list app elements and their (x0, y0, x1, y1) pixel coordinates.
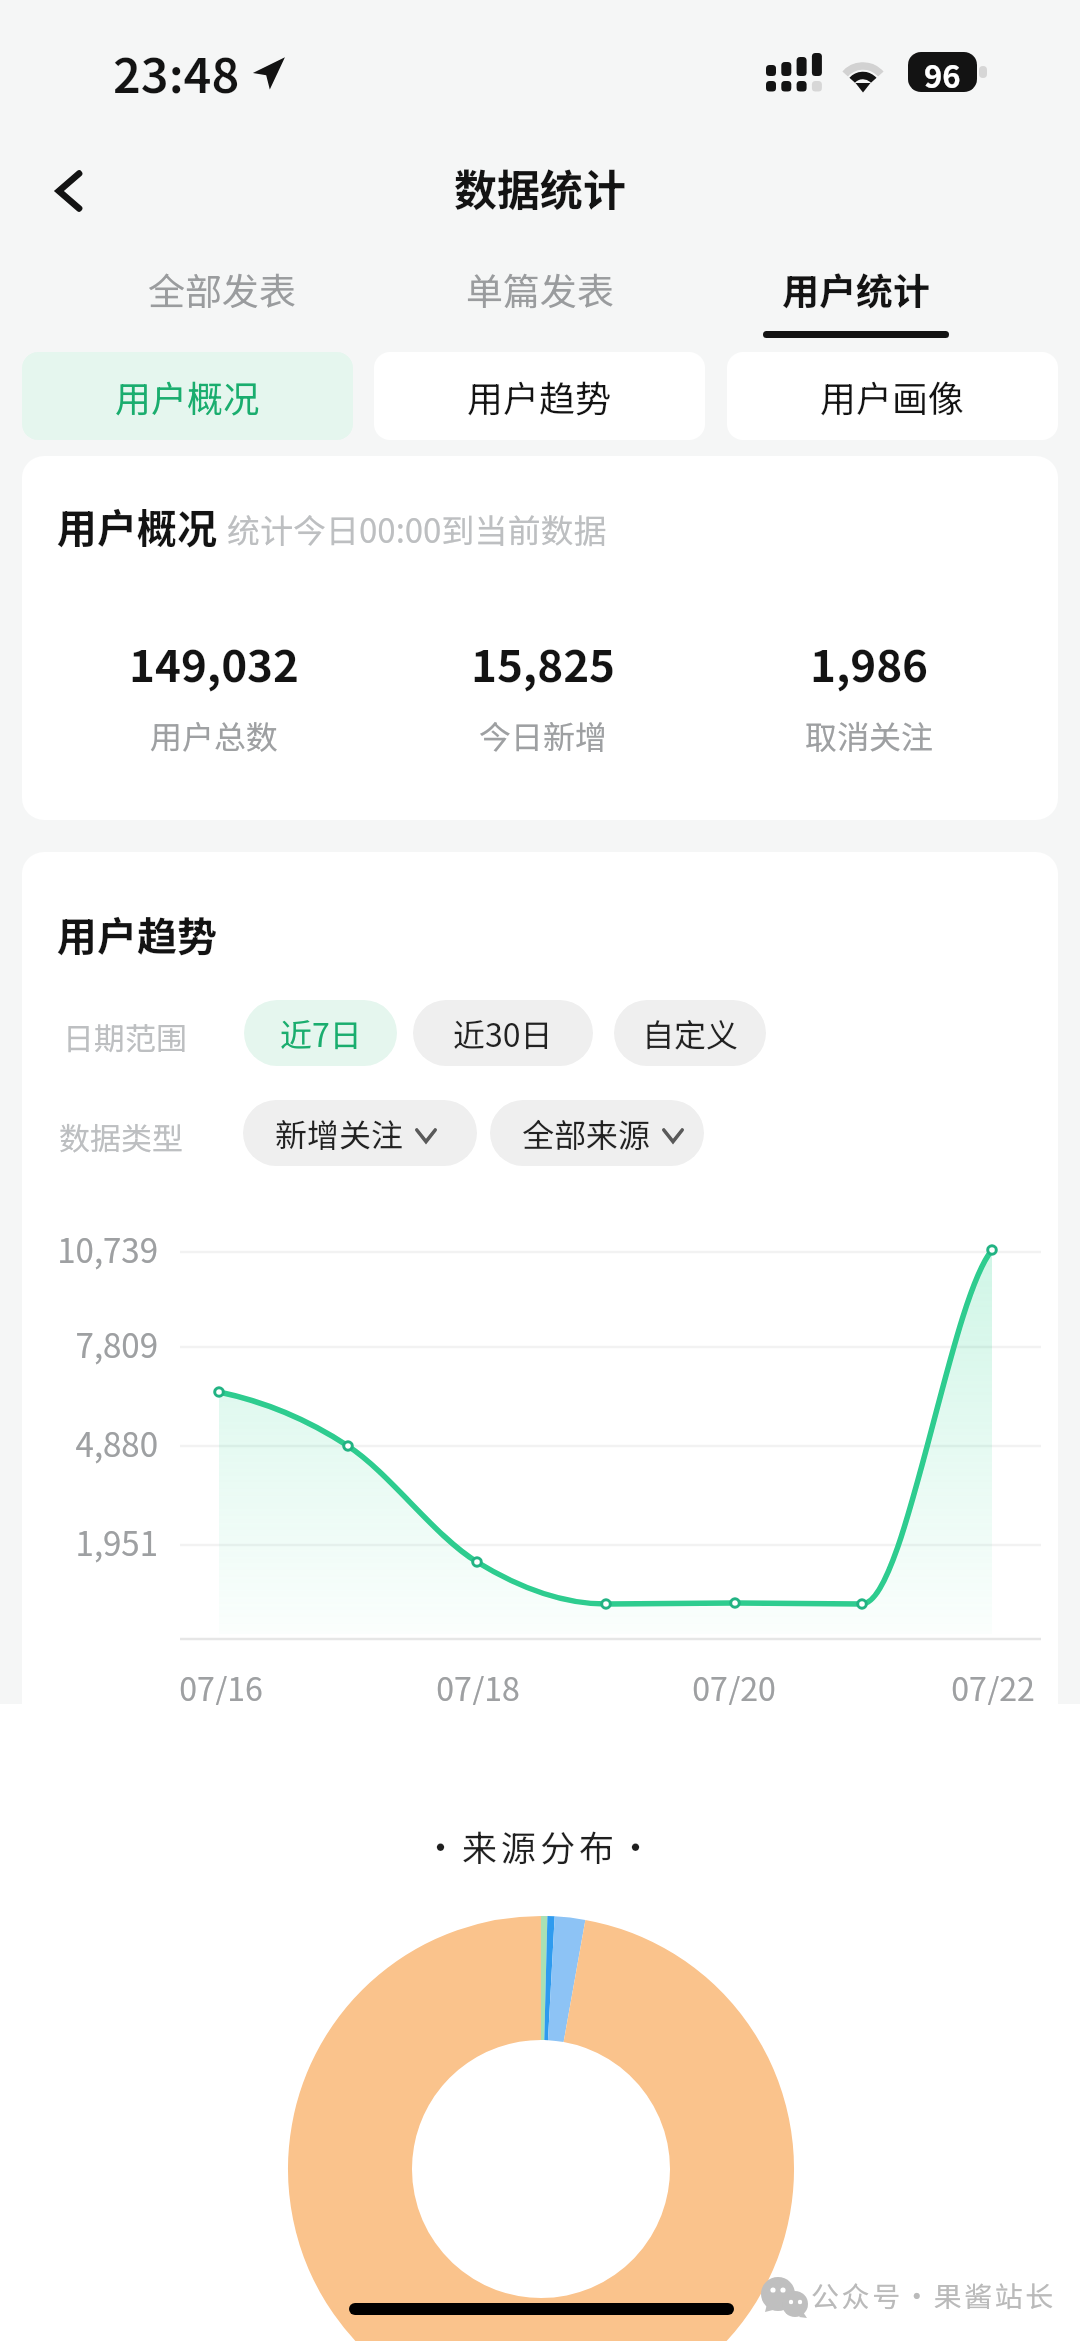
button[interactable]: 用户画像 (727, 352, 1058, 440)
staticText: 用户趋势 (57, 905, 217, 963)
staticText: 4,880 (22, 1419, 158, 1467)
button[interactable]: 用户统计 (726, 256, 986, 346)
button[interactable]: 用户概况 (22, 352, 353, 440)
staticText: 96 (924, 52, 961, 92)
staticText: 用户总数 (34, 712, 394, 758)
staticText: 07/16 (121, 1664, 321, 1705)
button[interactable]: 自定义 (614, 1000, 766, 1066)
staticText: 149,032 (34, 631, 394, 695)
button[interactable]: 近30日 (413, 1000, 593, 1066)
staticText: 用户统计 (726, 262, 986, 316)
staticText: 公众号·果酱站长 (811, 2275, 1056, 2316)
button[interactable]: Back (28, 150, 110, 232)
staticText: 07/18 (378, 1664, 578, 1705)
button[interactable]: 全部来源 (490, 1100, 704, 1166)
staticText: 23:48 (113, 37, 240, 107)
staticText: 7,809 (22, 1320, 158, 1368)
button[interactable]: 近7日 (244, 1000, 397, 1066)
staticText: 单篇发表 (410, 262, 670, 316)
staticText: 1,986 (689, 631, 1049, 695)
staticText: 07/20 (634, 1664, 834, 1705)
staticText: 统计今日00:00到当前数据 (227, 505, 607, 553)
button[interactable]: 新增关注 (243, 1100, 477, 1166)
staticText: 15,825 (363, 631, 723, 695)
staticText: 全部来源 (522, 1110, 651, 1156)
staticText: 今日新增 (363, 712, 723, 758)
staticText: 近7日 (280, 1010, 362, 1056)
staticText: 10,739 (22, 1225, 158, 1273)
staticText: 数据统计 (0, 156, 1080, 218)
button[interactable]: 用户趋势 (374, 352, 705, 440)
staticText: 数据类型 (59, 1114, 183, 1159)
staticText: 新增关注 (275, 1110, 404, 1156)
staticText: 1,951 (22, 1518, 158, 1566)
button[interactable]: 全部发表 (92, 256, 352, 346)
staticText: ·来源分布· (0, 1820, 1080, 1871)
staticText: 用户趋势 (467, 370, 612, 422)
staticText: 全部发表 (92, 262, 352, 316)
staticText: 用户概况 (115, 370, 260, 422)
staticText: 日期范围 (63, 1014, 187, 1059)
staticText: 用户概况 (57, 497, 217, 555)
staticText: 自定义 (642, 1010, 739, 1056)
staticText: 近30日 (453, 1010, 553, 1056)
button[interactable]: 单篇发表 (410, 256, 670, 346)
staticText: 07/22 (893, 1664, 1058, 1705)
staticText: 取消关注 (689, 712, 1049, 758)
staticText: 用户画像 (820, 370, 965, 422)
